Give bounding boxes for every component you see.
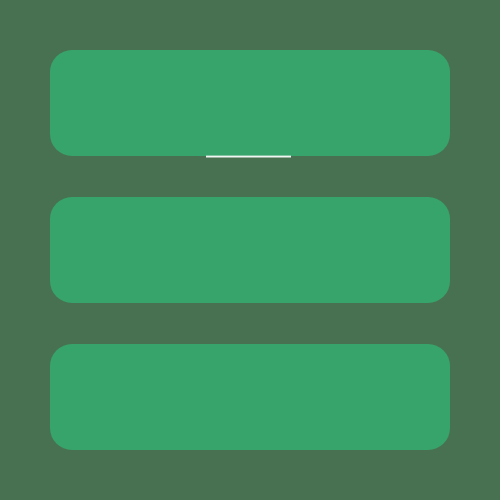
button[interactable]: Menu item 3 — [50, 344, 450, 450]
button[interactable]: Menu item 1 — [50, 50, 450, 156]
button[interactable]: Menu item 2 — [50, 197, 450, 303]
